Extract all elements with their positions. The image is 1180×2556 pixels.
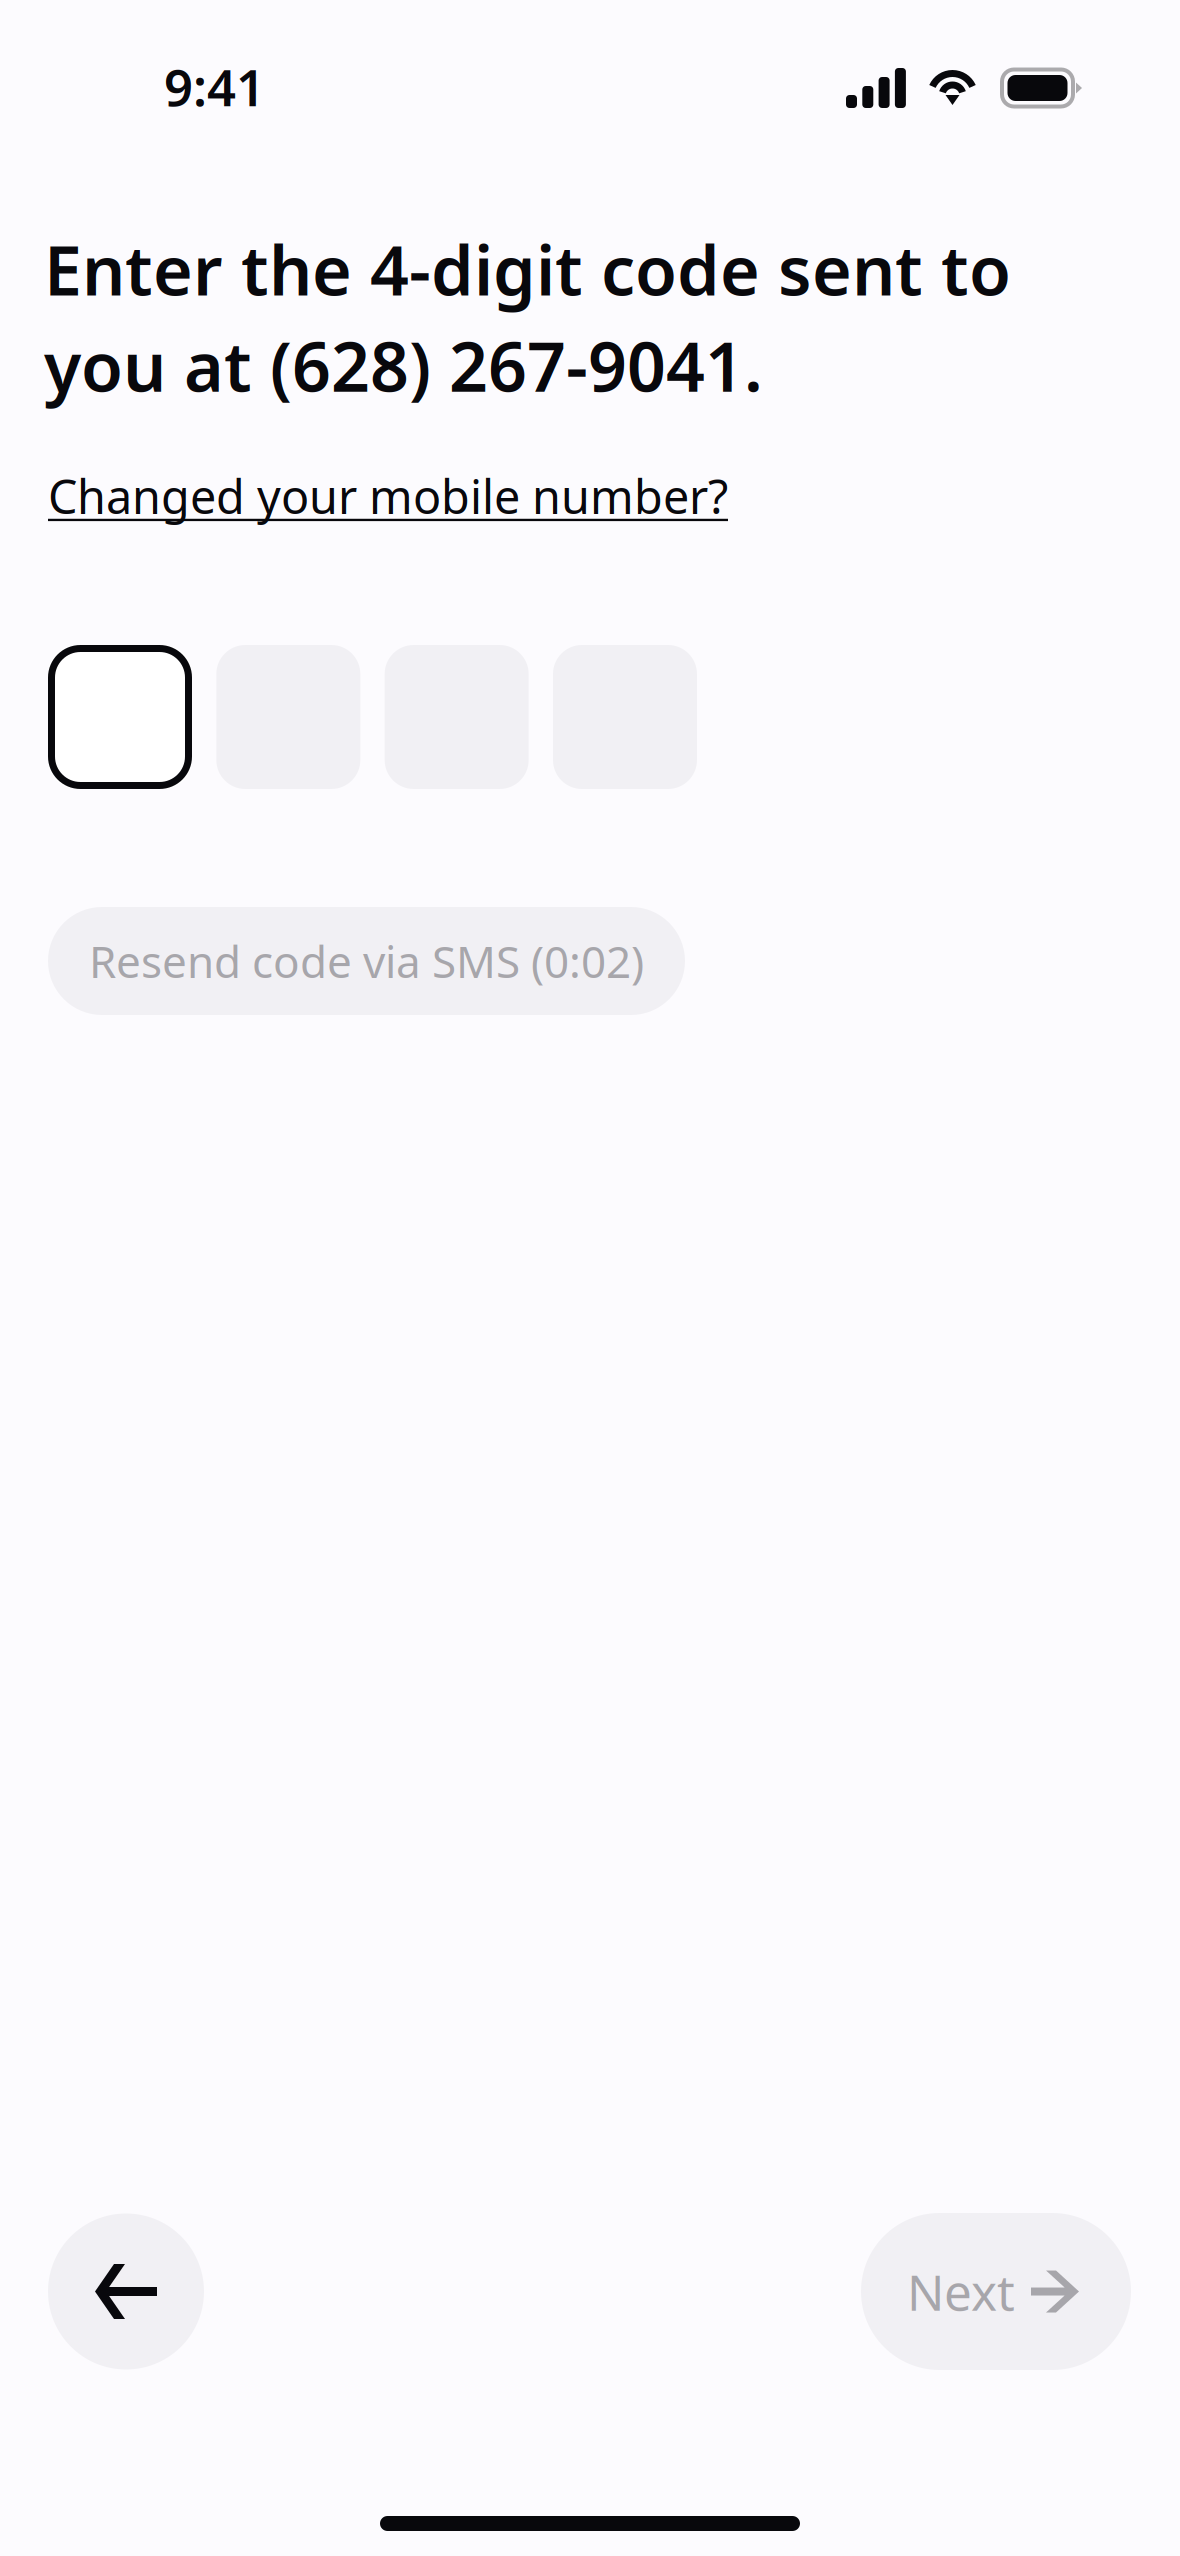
staticText: Changed your mobile number?	[48, 465, 728, 527]
staticText: Resend code via SMS (0:02)	[89, 932, 644, 990]
staticText: Next	[907, 2259, 1015, 2324]
staticText: Enter the 4-digit code sent to you at (6…	[44, 224, 1011, 411]
button[interactable]: Back	[48, 2213, 204, 2370]
button[interactable]: Next	[861, 2213, 1131, 2370]
button[interactable]: Changed your mobile number?	[48, 460, 728, 532]
button[interactable]: Digit 1	[48, 645, 192, 789]
button[interactable]: Resend code via SMS (0:02)	[48, 907, 685, 1015]
staticText: 9:41	[164, 53, 265, 120]
